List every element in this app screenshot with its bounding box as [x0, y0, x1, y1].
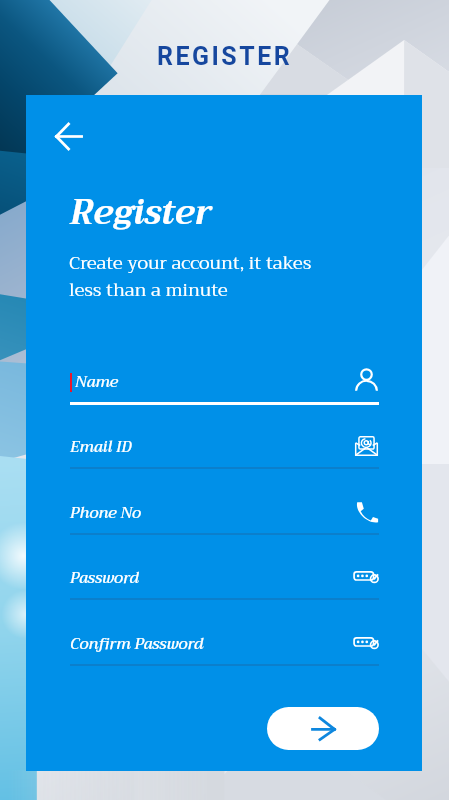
- staticText: Email ID: [70, 433, 132, 460]
- staticText: REGISTER: [157, 42, 293, 71]
- button[interactable]: Email ID: [70, 428, 379, 472]
- staticText: Confirm Password: [70, 630, 204, 657]
- staticText: Phone No: [70, 499, 141, 526]
- button[interactable]: Confirm Password: [70, 625, 379, 669]
- button[interactable]: Password: [70, 559, 379, 603]
- button[interactable]: Name: [70, 363, 379, 407]
- staticText: Register: [70, 183, 212, 243]
- staticText: Name: [75, 368, 118, 395]
- staticText: Create your account, it takes less than …: [69, 247, 312, 305]
- staticText: Password: [70, 564, 139, 591]
- button[interactable]: Back: [45, 113, 91, 159]
- button[interactable]: Continue: [267, 707, 379, 750]
- button[interactable]: Phone No: [70, 494, 379, 538]
